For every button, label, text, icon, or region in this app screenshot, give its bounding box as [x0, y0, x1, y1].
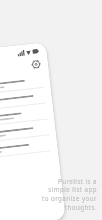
button[interactable]: Purelist is a simple list app to organiz…: [31, 177, 97, 212]
button[interactable]: [0, 91, 46, 116]
button[interactable]: [0, 138, 51, 163]
button[interactable]: [0, 106, 48, 132]
button[interactable]: Settings: [0, 42, 66, 220]
staticText: Purelist is a simple list app to organiz…: [31, 177, 97, 212]
button[interactable]: [0, 75, 44, 100]
button[interactable]: [0, 122, 49, 148]
button[interactable]: Settings: [30, 59, 42, 70]
